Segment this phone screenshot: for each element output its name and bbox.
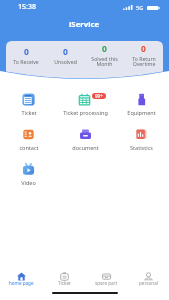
staticText: 0 — [141, 43, 146, 55]
staticText: To Return Overtime — [132, 55, 156, 68]
button[interactable]: 0 — [46, 40, 85, 71]
staticText: Video — [21, 179, 36, 186]
staticText: iService — [69, 19, 100, 30]
button[interactable]: Personal — [127, 271, 169, 287]
staticText: personal — [139, 280, 158, 286]
button[interactable]: Ticket — [0, 91, 57, 118]
button[interactable]: 99+ — [57, 91, 113, 118]
staticText: Equipment — [127, 109, 156, 116]
button[interactable]: Home page — [0, 271, 43, 287]
staticText: 0 — [63, 46, 68, 58]
staticText: home page — [9, 280, 34, 286]
other: Ticket — [60, 272, 69, 281]
staticText: To Receive — [13, 58, 39, 65]
staticText: document — [72, 144, 99, 151]
other: Personal — [144, 272, 153, 281]
staticText: Ticket processing — [63, 109, 108, 116]
button[interactable]: Video — [0, 161, 57, 188]
staticText: Ticket — [21, 109, 37, 116]
button[interactable]: Statistics — [113, 126, 169, 153]
staticText: spare part — [95, 280, 118, 286]
staticText: Solved this Month — [91, 55, 118, 68]
button[interactable]: contact — [0, 126, 57, 153]
button[interactable]: 0 — [124, 40, 163, 71]
button[interactable]: 0 — [85, 40, 124, 71]
staticText: Unsolved — [54, 58, 77, 65]
button[interactable]: document — [57, 126, 113, 153]
staticText: 99+ — [95, 93, 103, 99]
staticText: Statistics — [130, 144, 153, 151]
staticText: contact — [19, 144, 39, 151]
staticText: 0 — [102, 43, 107, 55]
staticText: Ticket — [58, 280, 71, 286]
staticText: 5G — [136, 4, 144, 11]
other: Home page — [17, 272, 26, 281]
button[interactable]: Equipment — [113, 91, 169, 118]
button[interactable]: Ticket — [43, 271, 85, 287]
button[interactable]: 0 — [6, 40, 46, 71]
staticText: 0 — [24, 46, 29, 58]
other: Spare part — [102, 272, 111, 281]
staticText: 15:38 — [18, 2, 36, 12]
button[interactable]: Spare part — [85, 271, 127, 287]
